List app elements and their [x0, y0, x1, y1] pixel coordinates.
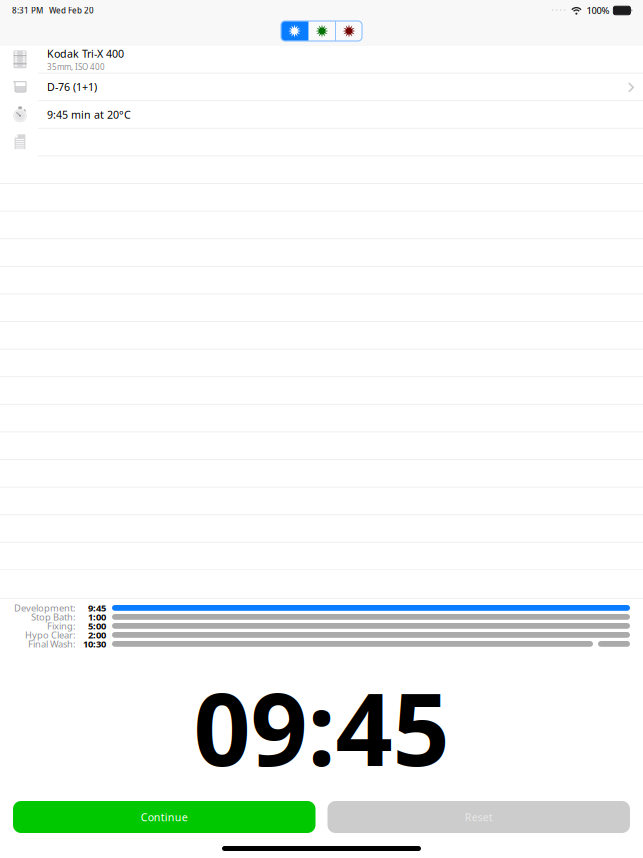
staticText: 100% — [586, 4, 609, 17]
button[interactable]: White light — [281, 21, 308, 41]
staticText: Development: — [14, 602, 76, 614]
button[interactable]: 9:45 min at 20°C — [0, 101, 643, 129]
button[interactable]: Kodak Tri-X 400 — [0, 46, 643, 74]
staticText: 5:00 — [88, 620, 106, 632]
staticText: Reset — [465, 810, 493, 824]
staticText: 2:00 — [88, 629, 106, 641]
staticText: · · · · — [551, 5, 565, 16]
button[interactable] — [0, 129, 643, 156]
staticText: 9:45 min at 20°C — [47, 107, 131, 122]
button[interactable]: Red safelight — [336, 21, 362, 41]
staticText: Final Wash: — [28, 638, 76, 650]
staticText: 9:45 — [88, 602, 106, 614]
staticText: Continue — [141, 810, 188, 824]
staticText: 35mm, ISO 400 — [47, 62, 105, 72]
staticText: D-76 (1+1) — [47, 80, 97, 94]
staticText: 1:00 — [88, 611, 106, 623]
staticText: 09:45 — [193, 661, 449, 794]
button[interactable]: Continue — [13, 801, 315, 833]
staticText: Hypo Clear: — [25, 629, 76, 641]
staticText: 8:31 PM Wed Feb 20 — [12, 5, 94, 16]
button[interactable]: Green safelight — [309, 21, 335, 41]
staticText: Fixing: — [47, 620, 76, 632]
button[interactable]: D-76 (1+1) — [0, 74, 643, 101]
staticText: Kodak Tri-X 400 — [47, 46, 124, 61]
staticText: 10:30 — [83, 638, 106, 650]
button[interactable]: Reset — [327, 801, 630, 833]
staticText: Stop Bath: — [31, 611, 76, 623]
